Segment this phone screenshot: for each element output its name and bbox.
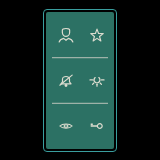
button[interactable]: Visibility [53,113,79,139]
button[interactable]: Notifications off [53,68,79,94]
button[interactable]: Password [84,113,110,139]
button[interactable]: Brightness [84,68,110,94]
button[interactable]: Favorite [84,22,110,48]
button[interactable]: Account [53,22,79,48]
